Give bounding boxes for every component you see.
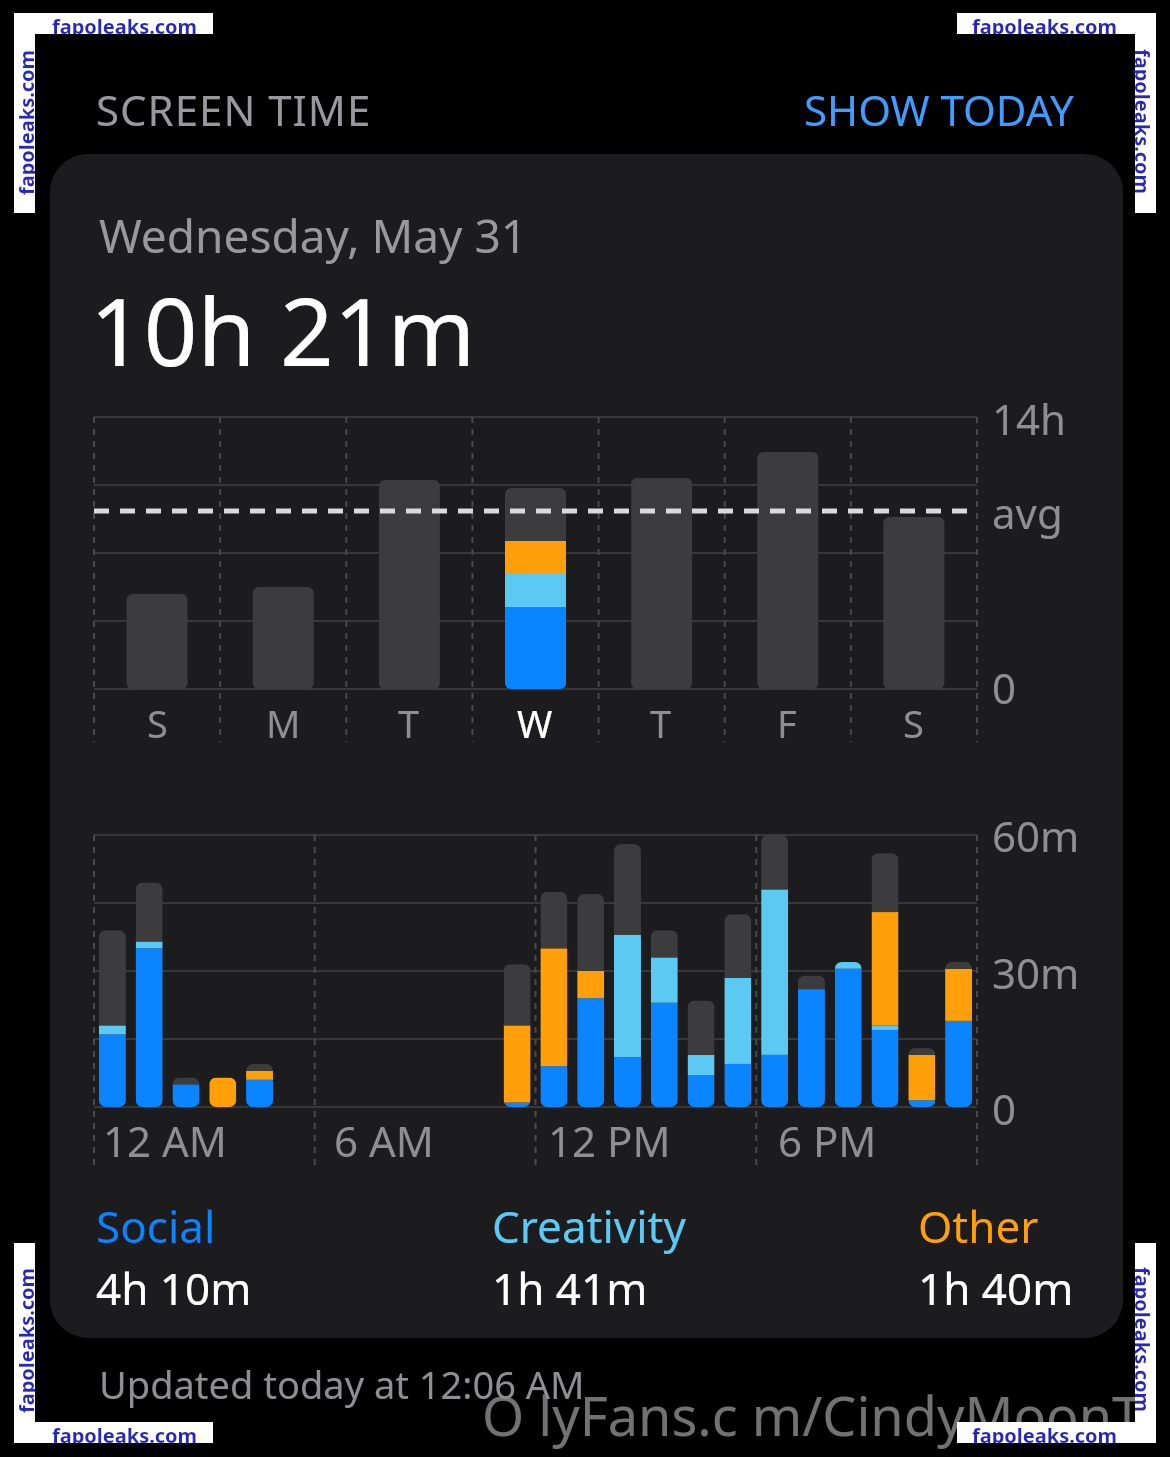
staticText: S bbox=[903, 697, 924, 749]
staticText: 1h 40m bbox=[918, 1258, 1074, 1318]
staticText: Social bbox=[96, 1196, 216, 1256]
staticText: fapoleaks.com bbox=[1134, 1267, 1156, 1413]
staticText: 60m bbox=[992, 807, 1080, 864]
staticText: 14h bbox=[992, 390, 1067, 447]
staticText: 10h 21m bbox=[90, 266, 476, 394]
staticText: fapoleaks.com bbox=[972, 13, 1118, 34]
staticText: 6 PM bbox=[778, 1112, 877, 1169]
staticText: T bbox=[650, 697, 672, 749]
staticText: Creativity bbox=[492, 1196, 686, 1256]
staticText: Other bbox=[918, 1196, 1039, 1256]
staticText: Updated today at 12:06 AM bbox=[99, 1358, 585, 1410]
staticText: 12 PM bbox=[548, 1112, 671, 1169]
staticText: W bbox=[517, 697, 553, 749]
staticText: fapoleaks.com bbox=[52, 1422, 198, 1443]
staticText: M bbox=[266, 697, 301, 749]
staticText: fapoleaks.com bbox=[972, 1422, 1118, 1443]
staticText: S bbox=[147, 697, 168, 749]
staticText: SCREEN TIME bbox=[96, 81, 372, 138]
staticText: avg bbox=[992, 484, 1063, 541]
staticText: SHOW TODAY bbox=[804, 81, 1074, 138]
staticText: O lyFans.c m/CindyMoonT bbox=[482, 1378, 1143, 1452]
staticText: fapoleaks.com bbox=[13, 1267, 35, 1413]
staticText: 4h 10m bbox=[96, 1258, 252, 1318]
staticText: fapoleaks.com bbox=[1134, 49, 1156, 195]
staticText: F bbox=[777, 697, 797, 749]
staticText: 30m bbox=[992, 944, 1080, 1001]
staticText: fapoleaks.com bbox=[13, 49, 35, 195]
staticText: 1h 41m bbox=[492, 1258, 648, 1318]
staticText: 0 bbox=[992, 659, 1017, 716]
staticText: Wednesday, May 31 bbox=[99, 204, 528, 267]
staticText: fapoleaks.com bbox=[52, 13, 198, 34]
staticText: 6 AM bbox=[334, 1112, 434, 1169]
staticText: 0 bbox=[992, 1080, 1017, 1137]
staticText: 12 AM bbox=[103, 1112, 227, 1169]
staticText: T bbox=[398, 697, 420, 749]
